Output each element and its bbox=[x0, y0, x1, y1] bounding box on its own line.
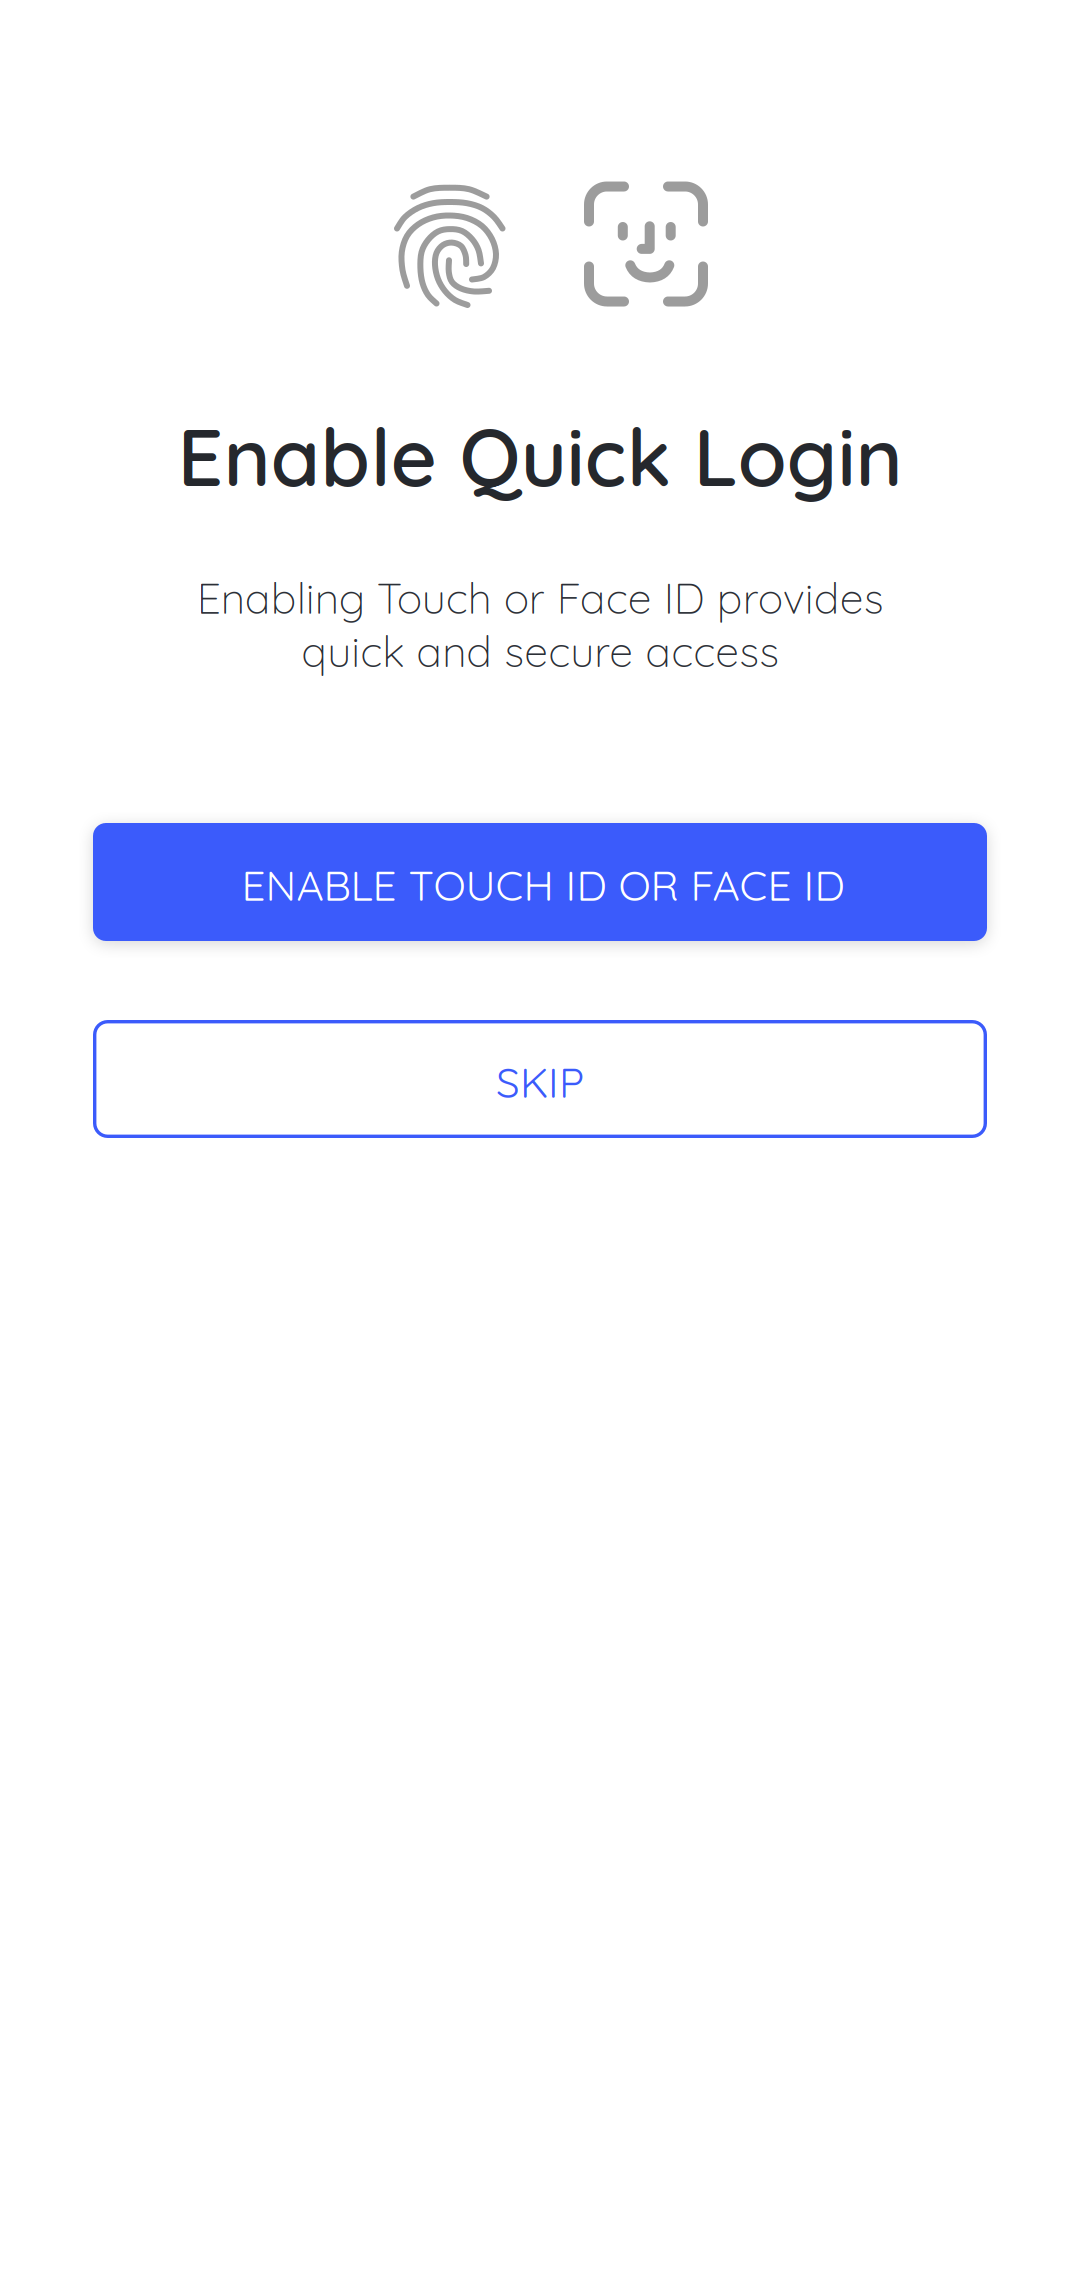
button[interactable]: ENABLE TOUCH ID OR FACE ID bbox=[93, 823, 987, 941]
staticText: Enable Quick Login bbox=[177, 406, 902, 506]
staticText: SKIP bbox=[496, 1056, 584, 1108]
button[interactable]: SKIP bbox=[93, 1020, 987, 1138]
staticText: ENABLE TOUCH ID OR FACE ID bbox=[241, 859, 844, 911]
staticText: Enabling Touch or Face ID provides quick… bbox=[196, 571, 883, 678]
